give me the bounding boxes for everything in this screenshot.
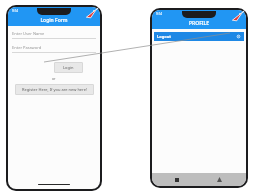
staticText: Login Form xyxy=(40,17,68,24)
staticText: or xyxy=(52,76,56,81)
button[interactable]: Back xyxy=(217,177,222,182)
staticText: PROFILE xyxy=(189,20,209,27)
staticText: Login xyxy=(63,65,74,70)
staticText: 9:14 xyxy=(12,9,18,13)
button[interactable]: Register Here, If you are new here! xyxy=(15,84,94,95)
staticText: Enter User Name xyxy=(12,31,45,36)
button[interactable]: Login xyxy=(54,62,83,73)
staticText: Enter Password xyxy=(12,45,42,50)
staticText: Register Here, If you are new here! xyxy=(22,87,88,92)
other: Settings xyxy=(236,34,241,39)
staticText: 9:14 xyxy=(156,12,162,16)
staticText: Logout xyxy=(157,34,172,39)
button[interactable]: Logout xyxy=(154,32,244,41)
